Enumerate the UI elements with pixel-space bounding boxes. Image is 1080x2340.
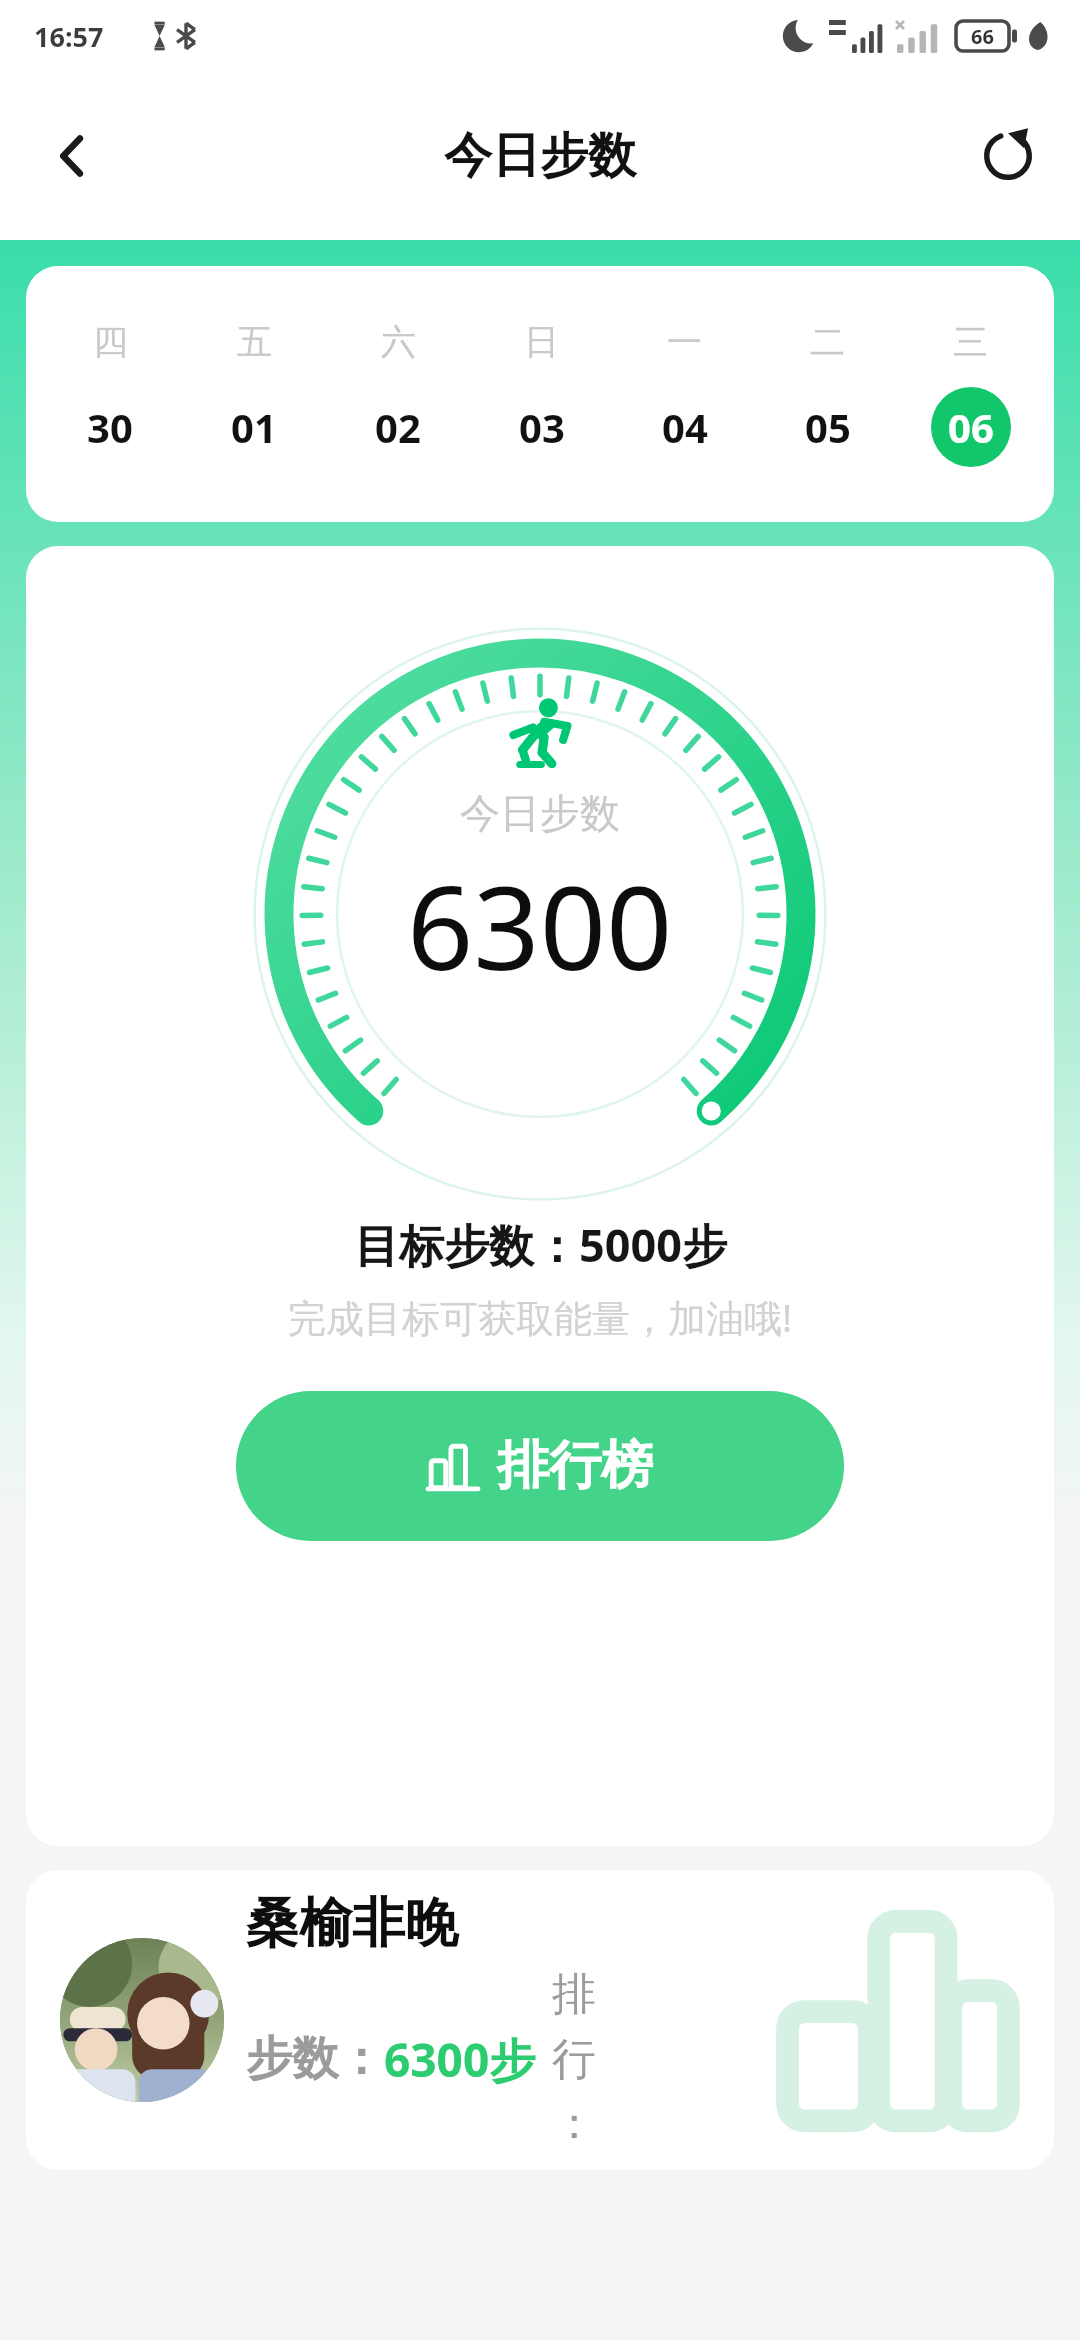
staticText: 日	[524, 320, 559, 364]
staticText: 一	[667, 320, 702, 364]
button[interactable]: 三	[899, 266, 1042, 522]
staticText: 66	[971, 23, 994, 50]
staticText: 排行榜	[497, 1433, 653, 1499]
staticText: 三	[953, 320, 988, 364]
staticText: 30	[87, 400, 133, 454]
staticText: 目标步数：5000步	[354, 1214, 727, 1275]
staticText: 完成目标可获取能量，加油哦!	[288, 1291, 793, 1343]
staticText: 今日步数	[460, 788, 620, 838]
staticText: 03	[519, 400, 565, 454]
button[interactable]: 桑榆非晚	[26, 1870, 1054, 2170]
staticText: 6300	[407, 846, 673, 1004]
button[interactable]: Back	[20, 104, 124, 208]
button[interactable]: 二	[756, 266, 899, 522]
staticText: 06	[948, 400, 994, 454]
staticText: 6300步	[384, 2028, 536, 2091]
button[interactable]: 六	[326, 266, 470, 522]
button[interactable]: Refresh	[956, 104, 1060, 208]
button[interactable]: 一	[613, 266, 756, 522]
staticText: 今日步数	[444, 126, 636, 186]
staticText: 05	[805, 400, 851, 454]
staticText: 01	[231, 400, 277, 454]
staticText: 04	[662, 400, 708, 454]
button[interactable]: 排行榜	[236, 1391, 844, 1541]
staticText: 五	[237, 320, 272, 364]
button[interactable]: 五	[182, 266, 326, 522]
staticText: 四	[93, 320, 128, 364]
staticText: 排 行 ：	[552, 1967, 596, 2151]
button[interactable]: 四	[38, 266, 182, 522]
staticText: 二	[810, 320, 845, 364]
staticText: 桑榆非晚	[246, 1890, 458, 1957]
button[interactable]: 日	[470, 266, 613, 522]
staticText: 16:57	[34, 18, 104, 55]
staticText: 步数：	[246, 2030, 384, 2088]
staticText: 02	[375, 400, 421, 454]
staticText: 六	[381, 320, 416, 364]
